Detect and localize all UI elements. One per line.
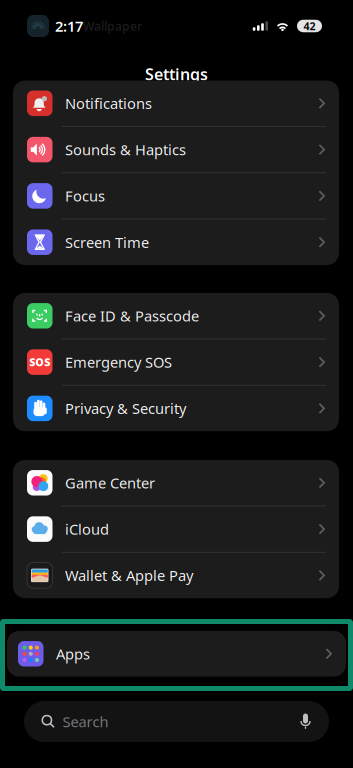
staticText: Focus <box>65 186 105 206</box>
button[interactable]: Face ID & Passcode <box>13 293 339 339</box>
staticText: Emergency SOS <box>65 352 172 372</box>
staticText: Face ID & Passcode <box>65 306 199 326</box>
staticText: Privacy & Security <box>65 399 186 418</box>
staticText: Apps <box>56 644 90 664</box>
staticText: 2:17 <box>55 16 83 36</box>
button[interactable]: Sounds & Haptics <box>13 127 339 172</box>
staticText: iCloud <box>65 519 109 539</box>
staticText: Wallpaper <box>83 18 142 34</box>
staticText: Notifications <box>65 94 152 113</box>
staticText: Sounds & Haptics <box>65 140 186 159</box>
staticText: Search <box>62 712 108 731</box>
button[interactable]: Screen Time <box>13 219 339 265</box>
button[interactable]: Privacy & Security <box>13 386 339 431</box>
staticText: Settings <box>145 63 208 85</box>
staticText: Screen Time <box>65 232 149 252</box>
button[interactable]: iCloud <box>13 506 339 552</box>
staticText: SOS <box>29 355 50 369</box>
button[interactable]: Search <box>24 701 329 742</box>
staticText: 42 <box>303 19 315 33</box>
button[interactable]: Focus <box>13 173 339 219</box>
button[interactable]: Wallet & Apple Pay <box>13 553 339 598</box>
button[interactable]: Notifications <box>13 80 339 126</box>
button[interactable]: SOS <box>13 339 339 385</box>
staticText: Game Center <box>65 473 155 493</box>
button[interactable]: Game Center <box>13 460 339 506</box>
button[interactable]: Apps <box>7 631 346 677</box>
staticText: Wallet & Apple Pay <box>65 566 193 585</box>
